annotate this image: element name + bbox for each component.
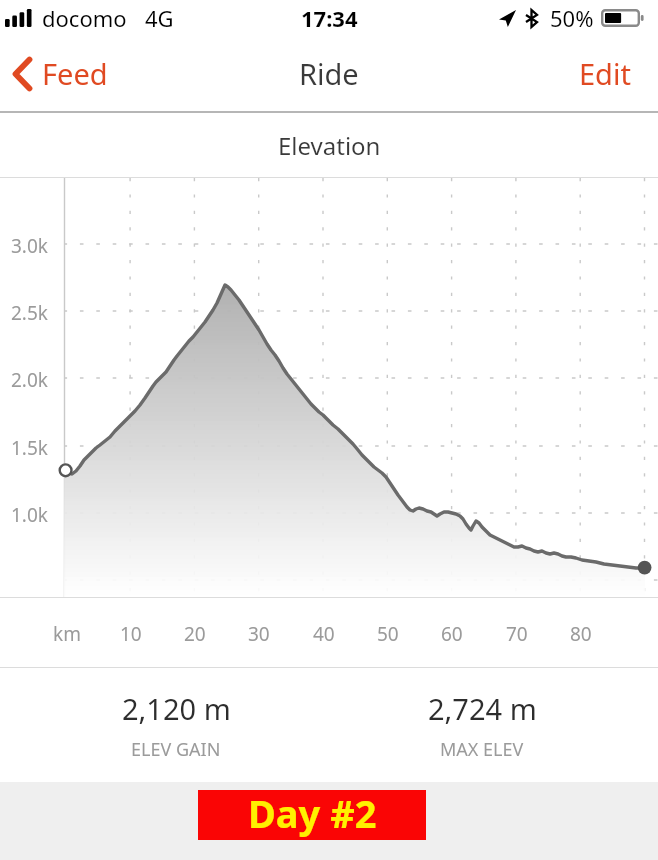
other: Location <box>499 10 516 27</box>
button[interactable]: Edit <box>563 44 658 103</box>
staticText: Ride <box>299 54 359 93</box>
staticText: Edit <box>579 54 631 93</box>
staticText: Elevation <box>278 129 381 162</box>
staticText: 2,120 m <box>122 689 231 728</box>
staticText: 30 <box>248 621 270 647</box>
button[interactable]: Day #2 <box>198 790 426 840</box>
staticText: 40 <box>313 621 335 647</box>
staticText: 2.5k <box>11 300 48 326</box>
staticText: Feed <box>42 54 108 93</box>
staticText: 50% <box>550 3 594 33</box>
staticText: 10 <box>120 621 142 647</box>
staticText: 60 <box>441 621 463 647</box>
staticText: 4G <box>145 3 174 33</box>
staticText: 20 <box>184 621 206 647</box>
staticText: 80 <box>570 621 592 647</box>
staticText: 1.5k <box>11 435 48 461</box>
staticText: 70 <box>506 621 528 647</box>
staticText: 50 <box>377 621 399 647</box>
staticText: MAX ELEV <box>440 737 524 762</box>
staticText: 2,724 m <box>428 689 537 728</box>
staticText: km <box>53 621 81 647</box>
staticText: Day #2 <box>248 787 377 837</box>
staticText: ELEV GAIN <box>131 737 221 762</box>
button[interactable]: 2,120 m <box>23 668 329 782</box>
button[interactable]: 2,724 m <box>329 668 635 782</box>
staticText: 1.0k <box>11 502 48 528</box>
other: Back <box>12 56 33 92</box>
staticText: docomo <box>42 3 127 33</box>
other: Bluetooth <box>526 10 537 27</box>
button[interactable]: Back <box>0 46 118 101</box>
staticText: 3.0k <box>11 233 48 259</box>
staticText: 17:34 <box>301 3 358 33</box>
staticText: 2.0k <box>11 367 48 393</box>
other: Battery 50 percent <box>601 9 645 27</box>
